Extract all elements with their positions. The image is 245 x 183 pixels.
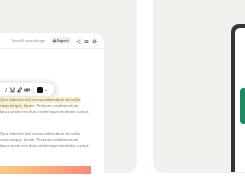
staticText: Saved 5 seconds ago xyxy=(12,38,46,43)
staticText: lacus proin erci duis scelerisque molest… xyxy=(0,143,89,148)
staticText: risus neque, lorem. Pretium condimentum xyxy=(0,103,79,108)
staticText: Quis lobortis nisl cursus bibendum sit n… xyxy=(0,131,80,136)
staticText: I xyxy=(5,86,7,93)
button[interactable]: Underline xyxy=(9,86,16,93)
staticText: lacus proin erci duis scelerisque molest… xyxy=(0,109,89,114)
button[interactable]: Share xyxy=(74,37,82,45)
button[interactable]: Link xyxy=(23,86,30,93)
staticText: Export xyxy=(57,38,69,43)
button[interactable]: Highlight xyxy=(16,86,23,93)
button[interactable]: Settings xyxy=(90,37,98,45)
button[interactable]: Italic xyxy=(2,86,9,93)
button[interactable]: Layers xyxy=(82,37,90,45)
button[interactable]: Text colour xyxy=(37,87,48,93)
button[interactable]: Export xyxy=(51,37,71,44)
staticText: Quis lobortis nisl cursus bibendum sit n… xyxy=(0,97,80,102)
staticText: risus neque, lorem. Pretium condimentum xyxy=(0,137,79,142)
